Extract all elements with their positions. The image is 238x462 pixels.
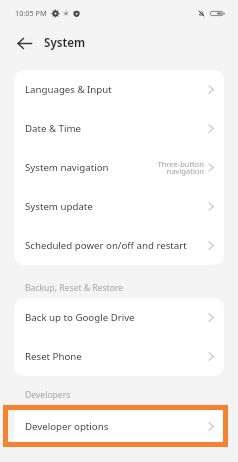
button[interactable]: Scheduled power on/off and restart bbox=[14, 226, 224, 265]
button[interactable]: System navigation bbox=[14, 148, 224, 187]
button[interactable]: Languages & Input bbox=[14, 70, 224, 109]
button[interactable]: Back up to Google Drive bbox=[14, 298, 224, 337]
staticText: Backup, Reset & Restore bbox=[25, 282, 124, 294]
staticText: Languages & Input bbox=[25, 83, 112, 96]
button[interactable]: Reset Phone bbox=[14, 337, 224, 376]
staticText: System navigation bbox=[25, 161, 109, 174]
button[interactable]: Back bbox=[13, 32, 35, 54]
staticText: Reset Phone bbox=[25, 350, 82, 363]
staticText: 10:05 PM bbox=[15, 8, 47, 18]
staticText: Developer options bbox=[25, 420, 109, 433]
staticText: Scheduled power on/off and restart bbox=[25, 239, 187, 252]
staticText: Developers bbox=[25, 389, 71, 401]
staticText: Three-button navigation bbox=[157, 159, 204, 177]
staticText: Back up to Google Drive bbox=[25, 311, 135, 324]
button[interactable]: System update bbox=[14, 187, 224, 226]
button[interactable]: Developer options bbox=[14, 407, 224, 446]
staticText: Date & Time bbox=[25, 122, 82, 135]
button[interactable]: Date & Time bbox=[14, 109, 224, 148]
staticText: System bbox=[44, 35, 86, 51]
staticText: System update bbox=[25, 200, 93, 213]
